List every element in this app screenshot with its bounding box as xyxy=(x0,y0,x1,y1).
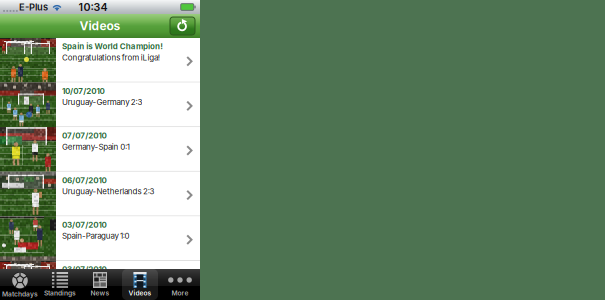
staticText: Congratulations from iLiga! xyxy=(62,53,160,62)
button[interactable]: Videos xyxy=(120,269,160,300)
button[interactable]: 06/07/2010 xyxy=(0,172,200,216)
button[interactable]: Matchdays xyxy=(0,269,40,300)
staticText: 03/07/2010 xyxy=(62,220,106,230)
button[interactable]: Refresh xyxy=(169,16,196,36)
staticText: Matchdays xyxy=(2,290,38,298)
button[interactable]: Standings xyxy=(40,269,80,300)
staticText: Germany-Argentina 4:0 xyxy=(62,276,147,285)
staticText: Videos xyxy=(128,289,151,297)
staticText: More xyxy=(171,289,188,297)
staticText: 03/07/2010 xyxy=(62,265,106,274)
button[interactable]: News xyxy=(80,269,120,300)
staticText: Germany-Spain 0:1 xyxy=(62,142,130,152)
staticText: Uruguay-Germany 2:3 xyxy=(62,97,142,107)
staticText: News xyxy=(90,289,109,297)
button[interactable]: 07/07/2010 xyxy=(0,127,200,172)
staticText: Videos xyxy=(79,19,120,33)
staticText: 10/07/2010 xyxy=(62,86,104,96)
staticText: Uruguay-Netherlands 2:3 xyxy=(62,186,155,196)
button[interactable]: 10/07/2010 xyxy=(0,83,200,127)
staticText: 07/07/2010 xyxy=(62,131,106,140)
button[interactable]: 03/07/2010 xyxy=(0,216,200,261)
staticText: 06/07/2010 xyxy=(62,175,106,185)
staticText: 10:34 xyxy=(78,0,107,13)
staticText: Spain-Paraguay 1:0 xyxy=(62,231,130,241)
staticText: E-Plus xyxy=(19,1,48,13)
button[interactable]: 03/07/2010 xyxy=(0,261,200,300)
staticText: Spain is World Champion! xyxy=(62,42,163,51)
staticText: Standings xyxy=(44,289,76,297)
button[interactable]: More xyxy=(160,269,200,300)
button[interactable]: Spain is World Champion! xyxy=(0,38,200,83)
